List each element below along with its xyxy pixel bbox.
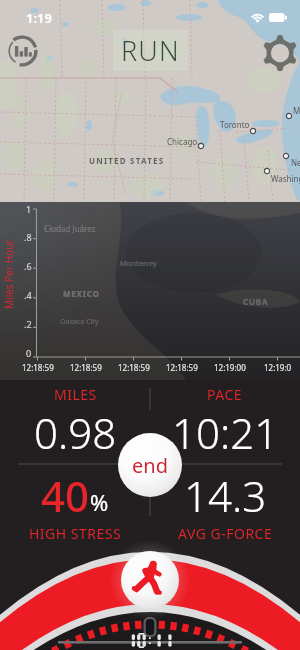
staticText: Washing xyxy=(271,173,300,184)
staticText: 14.3 xyxy=(184,467,267,524)
staticText: 12:18:59 xyxy=(22,362,54,373)
staticText: 0 xyxy=(26,347,32,359)
staticText: 1:19 xyxy=(26,9,52,27)
button[interactable]: Settings xyxy=(256,29,300,77)
staticText: .6 xyxy=(24,260,32,272)
staticText: Monterrey xyxy=(120,258,157,268)
staticText: PACE xyxy=(207,385,243,404)
staticText: 0.98 xyxy=(34,404,117,461)
staticText: 12:18:59 xyxy=(118,362,150,373)
staticText: AVG G-FORCE xyxy=(178,524,273,543)
staticText: 12:19:00 xyxy=(214,362,246,373)
staticText: end xyxy=(132,452,168,479)
staticText: Me xyxy=(293,105,300,116)
staticText: 10:21 xyxy=(172,404,279,461)
staticText: Oaxaca City xyxy=(60,317,99,327)
staticText: 12:19:0 xyxy=(264,362,292,373)
staticText: 12:18:59 xyxy=(166,362,198,373)
staticText: 1 xyxy=(26,203,32,215)
button[interactable]: RUN xyxy=(121,32,180,69)
button[interactable]: 14.3 xyxy=(150,464,300,550)
button[interactable]: Runner xyxy=(121,551,179,609)
button[interactable]: Statistics xyxy=(0,27,46,75)
button[interactable]: PACE xyxy=(150,380,300,464)
staticText: CUBA xyxy=(243,296,269,307)
staticText: UNITED STATES xyxy=(89,155,165,166)
staticText: Ne xyxy=(291,157,300,168)
button[interactable]: 40 xyxy=(0,464,150,550)
button[interactable]: MILES xyxy=(0,380,150,464)
staticText: MILES xyxy=(54,385,97,404)
staticText: .2 xyxy=(24,318,32,330)
staticText: % xyxy=(90,487,109,517)
staticText: HIGH STRESS xyxy=(29,524,122,543)
staticText: .8 xyxy=(24,231,32,243)
staticText: 12:18:59 xyxy=(70,362,102,373)
staticText: 40 xyxy=(41,467,90,524)
staticText: MEXICO xyxy=(63,288,100,299)
staticText: RUN xyxy=(121,32,180,69)
staticText: Chicago xyxy=(167,136,198,147)
staticText: Ciudad Juárez xyxy=(44,223,96,234)
button[interactable]: end xyxy=(118,433,182,497)
staticText: .4 xyxy=(24,289,32,301)
staticText: Miles Per Hour xyxy=(2,239,16,309)
staticText: Toronto xyxy=(220,119,250,130)
